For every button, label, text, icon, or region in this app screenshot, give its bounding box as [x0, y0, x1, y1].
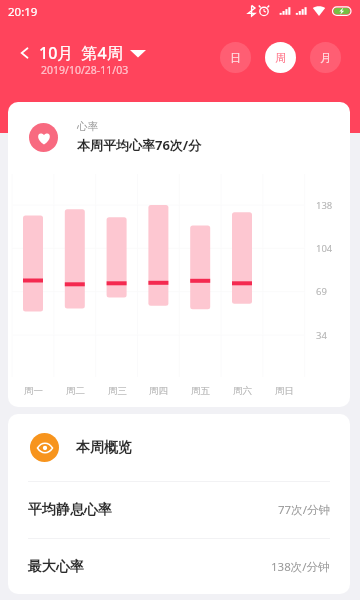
- staticText: 月: [320, 51, 331, 65]
- button[interactable]: Back: [18, 46, 32, 60]
- staticText: 周一: [24, 385, 43, 397]
- staticText: 周日: [275, 385, 294, 397]
- staticText: 20:19: [8, 4, 38, 20]
- staticText: 周三: [108, 385, 127, 397]
- staticText: 周六: [233, 385, 252, 397]
- button[interactable]: 日: [220, 42, 251, 73]
- staticText: 本周概览: [76, 439, 132, 457]
- staticText: 周四: [149, 385, 168, 397]
- button[interactable]: 周: [265, 42, 296, 73]
- staticText: 77次/分钟: [278, 502, 330, 518]
- staticText: 周五: [191, 385, 210, 397]
- staticText: 周: [275, 51, 286, 65]
- staticText: 周二: [66, 385, 85, 397]
- staticText: 138: [316, 199, 333, 212]
- staticText: 心率: [77, 120, 98, 133]
- staticText: 34: [316, 329, 327, 342]
- button[interactable]: 月: [310, 42, 341, 73]
- button[interactable]: 平均静息心率: [8, 482, 350, 538]
- staticText: 日: [230, 51, 241, 65]
- staticText: 69: [316, 285, 327, 298]
- staticText: 138次/分钟: [271, 559, 330, 575]
- button[interactable]: 最大心率: [8, 539, 350, 594]
- staticText: 本周平均心率76次/分: [77, 136, 202, 154]
- staticText: 最大心率: [28, 558, 84, 576]
- staticText: 平均静息心率: [28, 501, 112, 519]
- staticText: 104: [316, 242, 333, 255]
- staticText: 10月 第4周: [39, 42, 123, 64]
- staticText: 2019/10/28-11/03: [41, 63, 129, 77]
